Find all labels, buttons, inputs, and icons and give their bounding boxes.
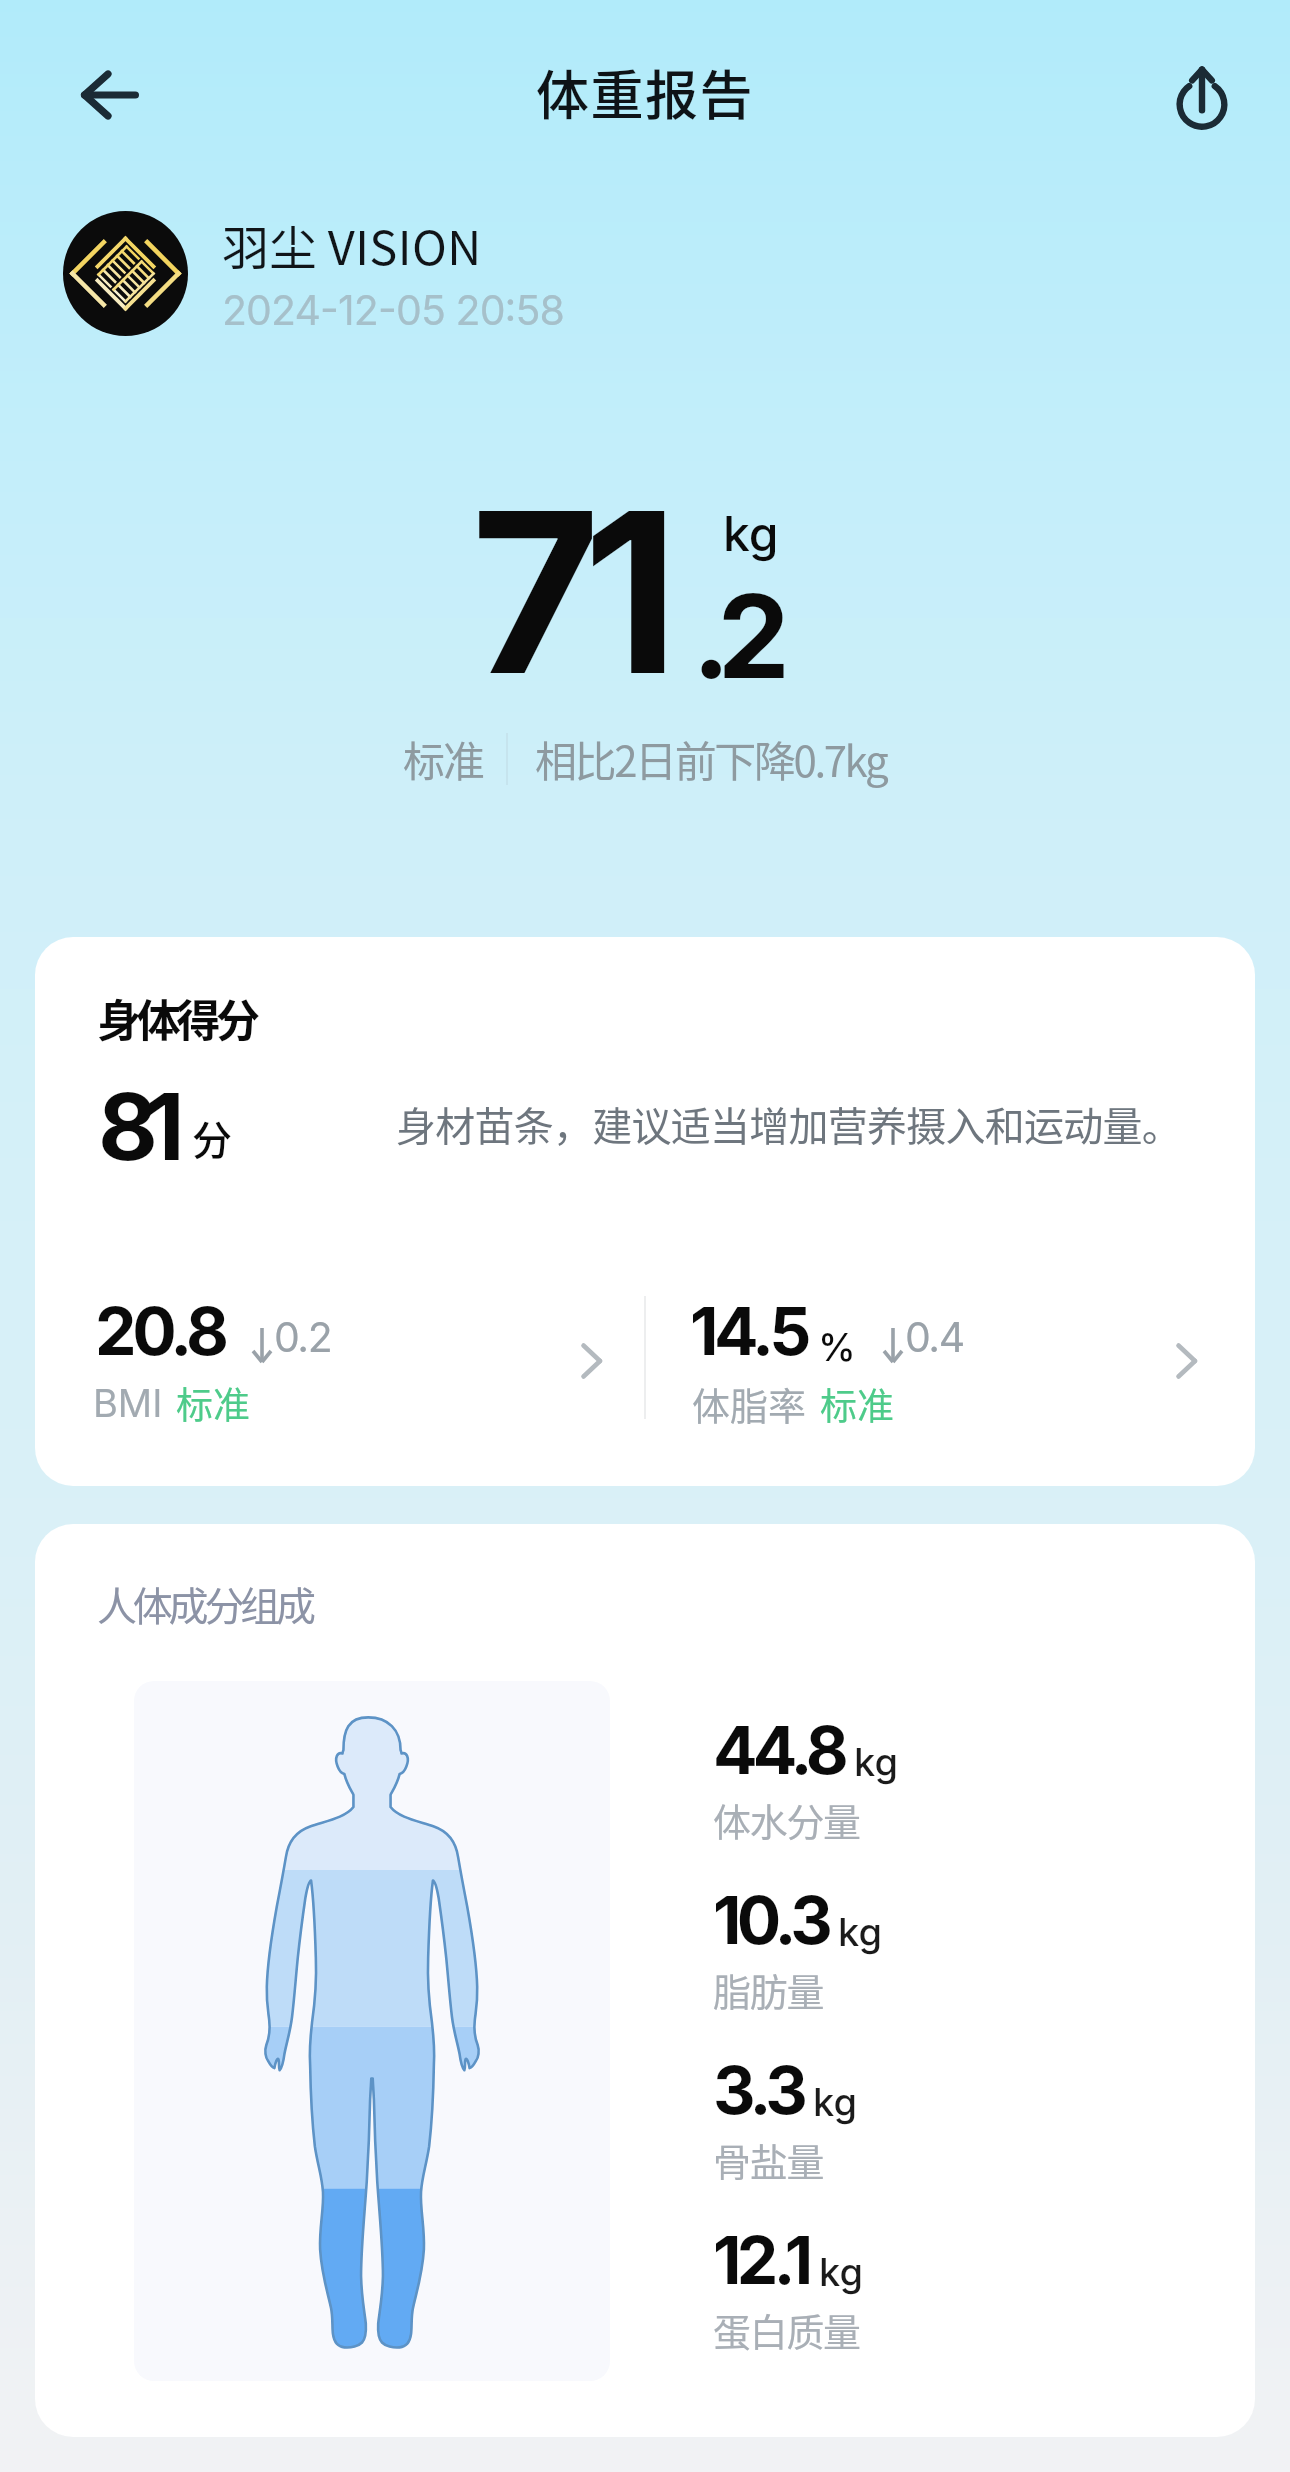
staticText: 44.8 — [713, 1710, 844, 1790]
staticText: 81 — [98, 1071, 172, 1182]
staticText: 人体成分组成 — [97, 1575, 312, 1633]
staticText: kg — [723, 504, 779, 562]
staticText: 骨盐量 — [713, 2132, 824, 2187]
button[interactable]: Share — [1154, 48, 1250, 144]
staticText: 10.3 — [713, 1880, 828, 1960]
staticText: 标准 — [820, 1377, 894, 1431]
staticText: 标准 — [176, 1376, 250, 1430]
staticText: BMI — [93, 1380, 163, 1426]
staticText: 身体得分 — [97, 986, 256, 1050]
staticText: 体水分量 — [713, 1792, 860, 1847]
staticText: 3.3 — [713, 2050, 803, 2130]
staticText: 脂肪量 — [713, 1962, 824, 2017]
staticText: 蛋白质量 — [713, 2302, 860, 2357]
staticText: 身材苗条，建议适当增加营养摄入和运动量。 — [396, 1095, 1181, 1153]
staticText: 体脂率 — [692, 1376, 807, 1431]
staticText: 14.5 — [690, 1291, 808, 1371]
staticText: kg — [819, 2249, 863, 2295]
staticText: .2 — [692, 567, 777, 706]
staticText: 标准 — [403, 728, 484, 789]
button[interactable]: Back — [62, 47, 158, 143]
staticText: 0.2 — [274, 1312, 332, 1362]
staticText: kg — [838, 1909, 882, 1955]
button[interactable]: 20.8 — [35, 1267, 644, 1437]
staticText: 0.4 — [905, 1312, 964, 1362]
staticText: kg — [813, 2079, 857, 2125]
staticText: 体重报告 — [536, 54, 754, 131]
staticText: 2024-12-05 20:58 — [222, 285, 565, 335]
staticText: 羽尘 VISION — [222, 210, 482, 278]
staticText: 71 — [471, 458, 662, 727]
button[interactable]: 羽尘 VISION — [40, 198, 660, 348]
button[interactable]: 14.5 — [646, 1267, 1255, 1437]
staticText: % — [818, 1324, 856, 1370]
staticText: 20.8 — [95, 1291, 225, 1371]
staticText: 12.1 — [713, 2220, 809, 2300]
staticText: kg — [854, 1739, 898, 1785]
staticText: 相比2日前下降0.7kg — [535, 728, 887, 789]
staticText: 分 — [192, 1109, 232, 1167]
